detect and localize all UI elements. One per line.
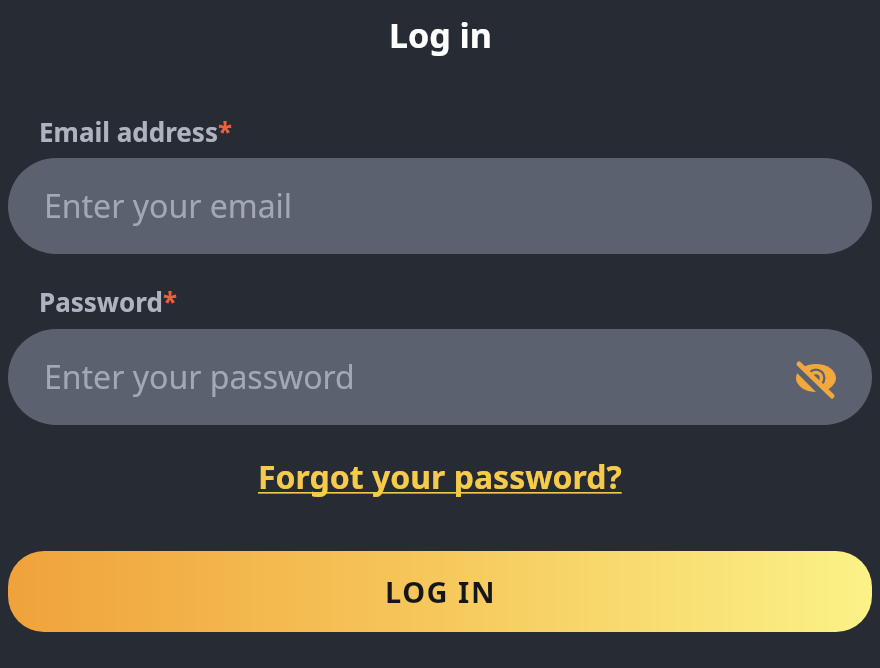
- staticText: Email address: [39, 114, 218, 149]
- staticText: Password: [39, 284, 163, 319]
- staticText: Enter your email: [44, 184, 293, 228]
- staticText: *: [218, 114, 233, 149]
- button[interactable]: Enter your email: [8, 158, 872, 254]
- button[interactable]: LOG IN: [8, 551, 872, 632]
- staticText: Log in: [389, 12, 492, 58]
- staticText: LOG IN: [385, 572, 496, 611]
- button[interactable]: Forgot your password?: [258, 455, 622, 499]
- button[interactable]: [794, 356, 838, 400]
- button[interactable]: Enter your password: [8, 329, 872, 425]
- staticText: Enter your password: [44, 355, 355, 399]
- staticText: *: [163, 284, 178, 319]
